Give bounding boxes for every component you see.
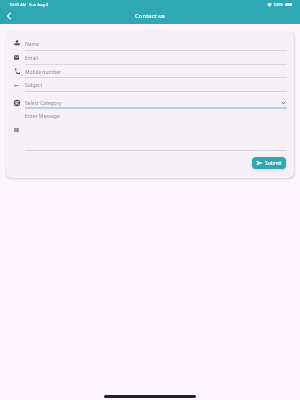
staticText: Select Category (25, 100, 62, 107)
button[interactable] (6, 38, 294, 53)
staticText: Subject (25, 82, 43, 89)
button[interactable] (6, 97, 294, 111)
button[interactable] (6, 66, 294, 80)
staticText: Contact us (135, 12, 165, 20)
staticText: 100% (273, 2, 284, 7)
staticText: 10:03 AM (9, 2, 27, 7)
staticText: Submit (265, 160, 282, 167)
button[interactable]: Submit (252, 157, 286, 169)
button[interactable]: Enter Message (25, 113, 286, 149)
staticText: Name (25, 41, 40, 48)
button[interactable] (6, 79, 294, 93)
button[interactable]: Back (2, 9, 16, 23)
button[interactable] (6, 52, 294, 66)
staticText: Sun Aug 4 (29, 2, 48, 7)
staticText: Email (25, 55, 38, 62)
staticText: Mobile number (25, 69, 62, 76)
staticText: Enter Message (25, 113, 60, 120)
